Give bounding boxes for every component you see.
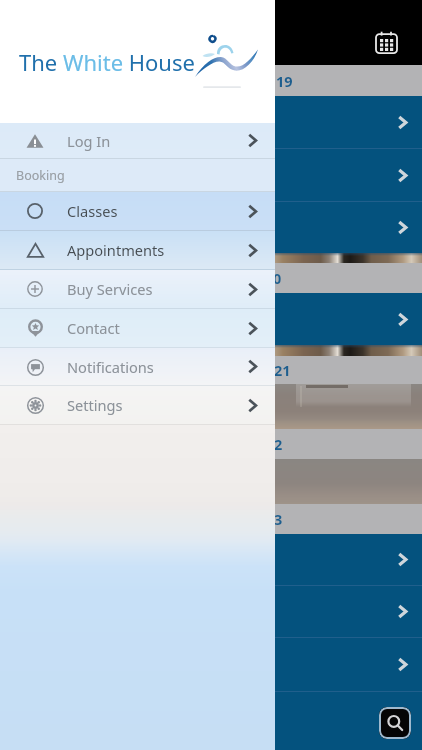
button[interactable]: Log In: [0, 123, 275, 158]
staticText: Appointments: [67, 240, 165, 260]
staticText: 3: [274, 509, 283, 529]
button[interactable]: [0, 149, 422, 201]
staticText: Booking: [16, 167, 65, 184]
button[interactable]: [0, 96, 422, 148]
button[interactable]: [0, 638, 422, 691]
button[interactable]: Settings: [0, 386, 275, 424]
button[interactable]: Appointments: [0, 231, 275, 269]
button[interactable]: [0, 534, 422, 585]
staticText: 21: [274, 360, 291, 380]
staticText: Contact: [67, 318, 120, 338]
staticText: Log In: [67, 131, 111, 151]
staticText: Notifications: [67, 357, 154, 377]
button[interactable]: [0, 293, 422, 345]
staticText: 19: [276, 71, 293, 91]
staticText: Buy Services: [67, 279, 153, 299]
button[interactable]: Search: [379, 707, 411, 739]
staticText: 0: [273, 268, 282, 288]
staticText: Classes: [67, 201, 118, 221]
button[interactable]: Classes: [0, 192, 275, 230]
button[interactable]: Contact: [0, 309, 275, 347]
staticText: Settings: [67, 395, 123, 415]
staticText: 2: [274, 434, 283, 454]
button[interactable]: Notifications: [0, 348, 275, 385]
button[interactable]: Buy Services: [0, 270, 275, 308]
button[interactable]: [0, 202, 422, 253]
button[interactable]: Calendar: [364, 20, 408, 64]
staticText: The White House: [19, 47, 195, 77]
button[interactable]: [0, 586, 422, 637]
